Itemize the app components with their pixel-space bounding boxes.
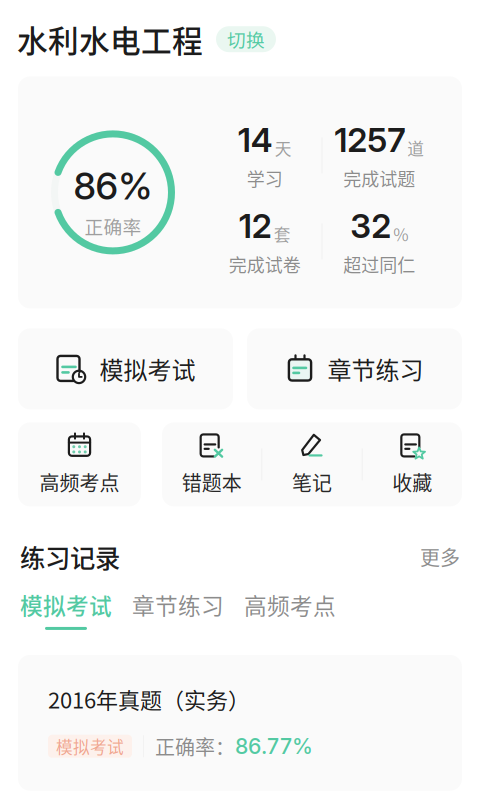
staticText: 学习 xyxy=(247,165,283,191)
staticText: 模拟考试 xyxy=(56,734,124,758)
staticText: 2016年真题（实务） xyxy=(48,683,250,715)
staticText: 章节练习 xyxy=(132,588,224,621)
button[interactable]: 章节练习 xyxy=(247,328,462,409)
staticText: 12 xyxy=(239,206,272,246)
button[interactable]: 高频考点 xyxy=(244,588,336,630)
button[interactable]: 更多 xyxy=(420,542,460,571)
staticText: 86.77% xyxy=(235,733,313,759)
staticText: 切换 xyxy=(227,26,265,53)
staticText: 套 xyxy=(274,222,291,246)
staticText: 章节练习 xyxy=(327,351,423,386)
staticText: 练习记录 xyxy=(20,538,120,575)
staticText: 模拟考试 xyxy=(20,588,112,621)
staticText: 道 xyxy=(407,136,424,160)
staticText: 天 xyxy=(275,136,292,160)
staticText: 模拟考试 xyxy=(99,351,195,386)
staticText: 14 xyxy=(238,120,273,160)
staticText: 32 xyxy=(350,206,391,246)
staticText: 错题本 xyxy=(182,467,242,496)
staticText: 完成试题 xyxy=(343,165,415,191)
staticText: 高频考点 xyxy=(39,467,119,496)
button[interactable]: 收藏 xyxy=(363,432,462,496)
button[interactable]: 笔记 xyxy=(262,432,362,496)
staticText: 水利水电工程 xyxy=(17,17,203,61)
button[interactable]: 模拟考试 xyxy=(18,328,233,409)
staticText: 正确率 xyxy=(84,212,141,239)
staticText: 更多 xyxy=(420,542,460,571)
button[interactable]: 高频考点 xyxy=(18,422,141,506)
staticText: 超过同仁 xyxy=(343,251,415,277)
button[interactable]: 错题本 xyxy=(162,432,261,496)
staticText: 笔记 xyxy=(292,467,332,496)
staticText: 正确率： xyxy=(155,732,235,761)
button[interactable]: 模拟考试 xyxy=(20,588,112,630)
staticText: 1257 xyxy=(334,120,405,160)
staticText: 完成试卷 xyxy=(229,251,301,277)
staticText: 收藏 xyxy=(392,467,432,496)
staticText: 86% xyxy=(73,163,152,208)
staticText: % xyxy=(393,222,408,246)
button[interactable]: 切换 xyxy=(216,26,276,52)
button[interactable]: 2016年真题（实务） xyxy=(18,655,462,791)
button[interactable]: 章节练习 xyxy=(132,588,224,630)
staticText: 高频考点 xyxy=(244,588,336,621)
